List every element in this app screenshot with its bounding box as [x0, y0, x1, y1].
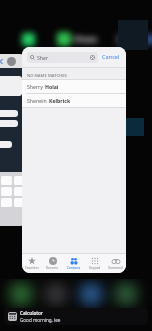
staticText: Recents — [46, 266, 59, 270]
staticText: NO NAME MATCHES — [27, 73, 67, 79]
staticText: Calculator — [20, 310, 43, 316]
button[interactable]: Keypad — [84, 253, 105, 273]
staticText: Favorites — [25, 266, 39, 270]
button[interactable]: Sherwin — [22, 94, 126, 107]
button[interactable]: Voicemail — [105, 253, 126, 273]
button[interactable]: Calculator — [4, 308, 148, 325]
staticText: Contacts — [67, 266, 81, 270]
staticText: Holai — [45, 83, 59, 90]
button[interactable]: Cancel — [101, 51, 121, 63]
staticText: Good morning, lee — [20, 317, 61, 323]
button[interactable]: Contacts — [63, 253, 84, 273]
button[interactable] — [0, 54, 26, 226]
button[interactable]: Recents — [42, 253, 63, 273]
staticText: Keypad — [89, 266, 101, 270]
staticText: Cancel — [102, 53, 120, 61]
button[interactable]: Sher — [22, 47, 126, 273]
staticText: Voicemail — [108, 266, 123, 270]
staticText: Phone — [74, 34, 98, 44]
button[interactable]: Favorites — [22, 253, 42, 273]
staticText: Sherry — [27, 83, 43, 90]
staticText: Kelbrick — [49, 97, 71, 104]
button[interactable]: Sherry — [22, 80, 126, 93]
staticText: Sherwin — [27, 97, 47, 104]
staticText: Sher — [37, 54, 49, 61]
button[interactable]: Sher — [27, 52, 98, 63]
